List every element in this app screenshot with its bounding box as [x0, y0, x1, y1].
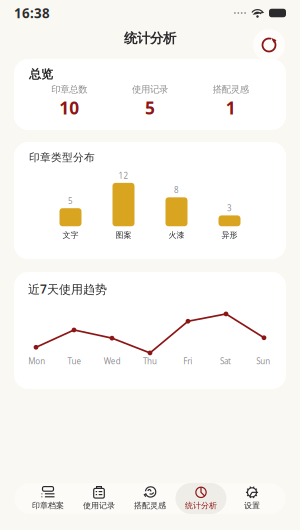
button[interactable]: 统计分析	[175, 483, 226, 514]
staticText: 10	[59, 96, 79, 119]
staticText: 设置	[244, 501, 260, 510]
button[interactable]: 刷新	[253, 29, 285, 61]
staticText: 16:38	[14, 4, 50, 22]
staticText: 5	[145, 96, 155, 119]
button[interactable]: 搭配灵感	[124, 483, 175, 514]
staticText: 搭配灵感	[134, 501, 166, 510]
staticText: Tue	[68, 356, 82, 366]
staticText: Thu	[143, 356, 157, 366]
staticText: 12	[118, 170, 128, 181]
staticText: 总览	[29, 67, 53, 82]
staticText: 5	[68, 196, 73, 206]
staticText: 使用记录	[132, 84, 168, 95]
staticText: 图案	[115, 230, 131, 240]
button[interactable]: 使用记录	[73, 483, 124, 514]
staticText: 3	[227, 203, 232, 213]
staticText: Mon	[28, 356, 45, 366]
staticText: 印章类型分布	[29, 151, 95, 164]
staticText: Sun	[256, 356, 270, 366]
staticText: 印章档案	[32, 501, 64, 510]
staticText: 印章总数	[51, 84, 87, 95]
staticText: Wed	[104, 356, 121, 366]
staticText: Fri	[183, 356, 192, 366]
button[interactable]: 印章档案	[22, 483, 73, 514]
staticText: 火漆	[168, 230, 184, 240]
staticText: 文字	[62, 230, 78, 240]
staticText: 统计分析	[185, 501, 217, 510]
staticText: 异形	[221, 230, 237, 240]
button[interactable]: 设置	[226, 483, 277, 514]
staticText: 使用记录	[83, 501, 115, 510]
staticText: 近7天使用趋势	[28, 281, 107, 297]
staticText: 8	[174, 185, 179, 195]
staticText: 1	[226, 96, 236, 119]
staticText: 搭配灵感	[213, 84, 249, 95]
staticText: Sat	[220, 356, 231, 366]
staticText: 统计分析	[124, 30, 176, 46]
